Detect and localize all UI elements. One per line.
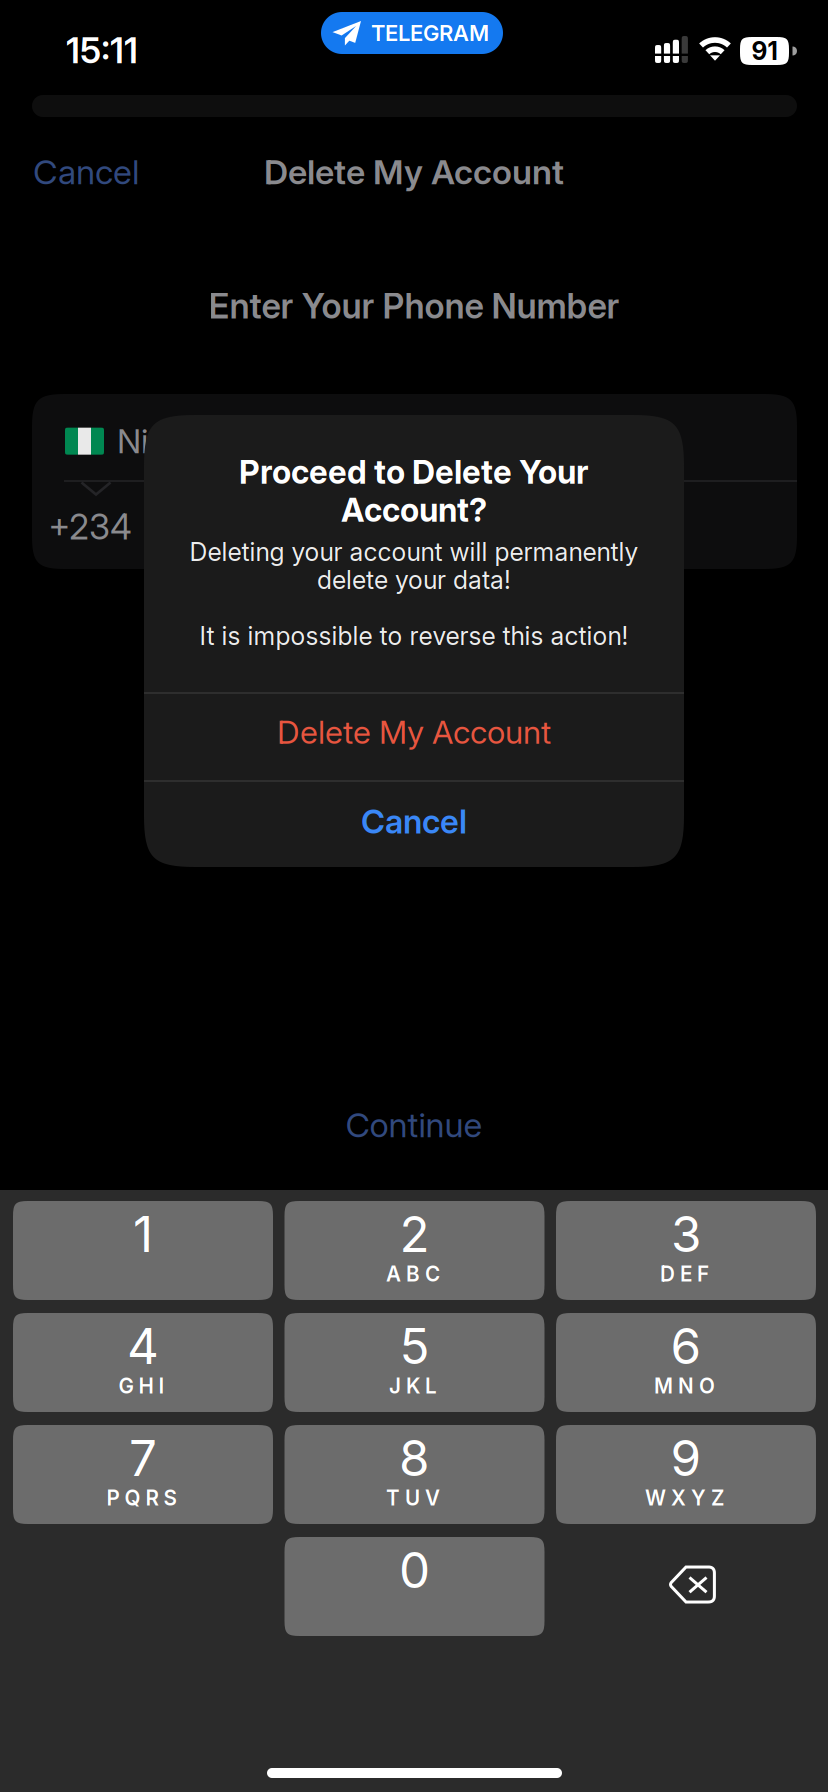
staticText: 91 <box>751 36 777 66</box>
staticText: 2 <box>399 1204 429 1264</box>
staticText: 15:11 <box>66 29 138 72</box>
staticText: Enter Your Phone Number <box>208 285 619 327</box>
staticText: Deleting your account will permanently <box>189 537 638 567</box>
button[interactable]: Cancel <box>144 778 684 865</box>
staticText: 1 <box>133 1204 153 1264</box>
button[interactable]: 3 <box>556 1201 816 1300</box>
staticText: TELEGRAM <box>371 20 489 46</box>
staticText: Nigeria <box>117 421 222 461</box>
button[interactable]: Delete My Account <box>144 688 684 776</box>
staticText: 9 <box>670 1428 701 1488</box>
staticText: +234 <box>48 506 132 548</box>
staticText: 4 <box>127 1316 159 1376</box>
button[interactable]: Continue <box>0 1090 828 1160</box>
button[interactable]: 4 <box>13 1313 273 1412</box>
staticText: WXYZ <box>645 1485 724 1510</box>
button[interactable]: 7 <box>13 1425 273 1524</box>
staticText: 8 <box>399 1428 430 1488</box>
staticText: Proceed to Delete Your <box>239 452 589 491</box>
staticText: TUV <box>386 1485 440 1510</box>
staticText: Cancel <box>33 151 139 192</box>
staticText: 0 <box>399 1540 430 1600</box>
button[interactable]: 2 <box>284 1201 544 1300</box>
staticText: 6 <box>670 1316 701 1376</box>
staticText: delete your data! <box>317 565 511 595</box>
button[interactable]: 8 <box>284 1425 544 1524</box>
staticText: MNO <box>654 1373 715 1398</box>
button[interactable]: 9 <box>556 1425 816 1524</box>
staticText: ABC <box>386 1261 440 1286</box>
staticText: 5 <box>399 1316 429 1376</box>
staticText: It is impossible to reverse this action! <box>199 621 628 651</box>
button[interactable]: 6 <box>556 1313 816 1412</box>
staticText: DEF <box>660 1261 709 1286</box>
button[interactable]: 5 <box>284 1313 544 1412</box>
button[interactable]: 0 <box>284 1537 544 1636</box>
button[interactable]: 1 <box>13 1201 273 1300</box>
button[interactable]: Cancel <box>0 134 170 210</box>
staticText: Delete My Account <box>277 713 551 751</box>
staticText: Your phone number <box>158 506 463 548</box>
button[interactable]: Delete <box>556 1537 816 1636</box>
staticText: Cancel <box>361 802 467 841</box>
staticText: Account? <box>341 490 487 529</box>
staticText: Delete My Account <box>264 151 564 192</box>
staticText: JKL <box>389 1373 437 1398</box>
staticText: 3 <box>671 1204 701 1264</box>
staticText: PQRS <box>106 1485 176 1510</box>
staticText: Continue <box>345 1105 482 1145</box>
staticText: 7 <box>129 1428 157 1488</box>
staticText: GHI <box>118 1373 164 1398</box>
